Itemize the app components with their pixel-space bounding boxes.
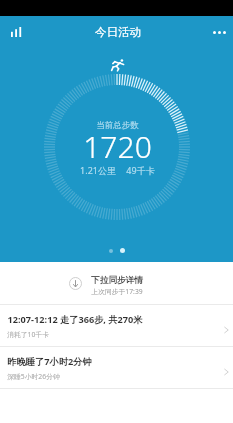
staticText: 消耗了10千卡 (7, 330, 49, 339)
button[interactable]: 下拉同步详情 (0, 262, 233, 304)
button[interactable]: 12:07-12:12 走了366步, 共270米 (0, 305, 233, 346)
staticText: 49千卡 (126, 164, 155, 176)
staticText: 今日活动 (95, 25, 141, 39)
button[interactable]: Statistics (3, 19, 29, 45)
staticText: 12:07-12:12 走了366步, 共270米 (7, 313, 143, 326)
button[interactable]: More options (206, 19, 232, 45)
staticText: 当前总步数 (96, 120, 139, 131)
staticText: 下拉同步详情 (91, 275, 143, 286)
staticText: 深睡5小时26分钟 (7, 372, 60, 381)
staticText: 1.21公里 (80, 164, 116, 176)
staticText: 昨晚睡了7小时2分钟 (7, 355, 92, 368)
button[interactable]: 昨晚睡了7小时2分钟 (0, 347, 233, 388)
staticText: 1720 (83, 126, 152, 167)
staticText: 上次同步于17:39 (91, 287, 143, 296)
